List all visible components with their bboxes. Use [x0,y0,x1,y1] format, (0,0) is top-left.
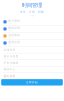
button[interactable]: 账户资料 [0,18,64,25]
button[interactable]: 显示与亮度 [0,53,64,59]
button[interactable]: 隐私设置 [0,26,64,32]
staticText: 存储空间 [3,48,15,51]
staticText: 帮助中心 [3,68,15,71]
staticText: 显示与亮度 [3,55,18,58]
staticText: 通用设置 [8,40,20,44]
button[interactable]: 存储空间 [0,47,64,53]
staticText: 消息通知 [8,33,20,37]
staticText: 公开 [8,30,10,31]
staticText: 隐私设置 [8,26,20,30]
button[interactable]: 帮助中心 [0,66,64,73]
staticText: 时间管理 [22,2,42,9]
staticText: 立即开始 [26,81,38,84]
button[interactable]: 通用设置 [0,40,64,46]
staticText: 退出登录 [3,74,15,78]
button[interactable]: 声音与触感 [0,60,64,66]
button[interactable]: 消息通知 [0,33,64,39]
button[interactable]: 退出登录 [0,73,64,79]
staticText: 账户资料 [8,19,20,23]
staticText: 专注 · 计划 · 回顾 [20,10,44,13]
staticText: 声音与触感 [3,61,18,65]
button[interactable]: 立即开始 [1,79,63,85]
